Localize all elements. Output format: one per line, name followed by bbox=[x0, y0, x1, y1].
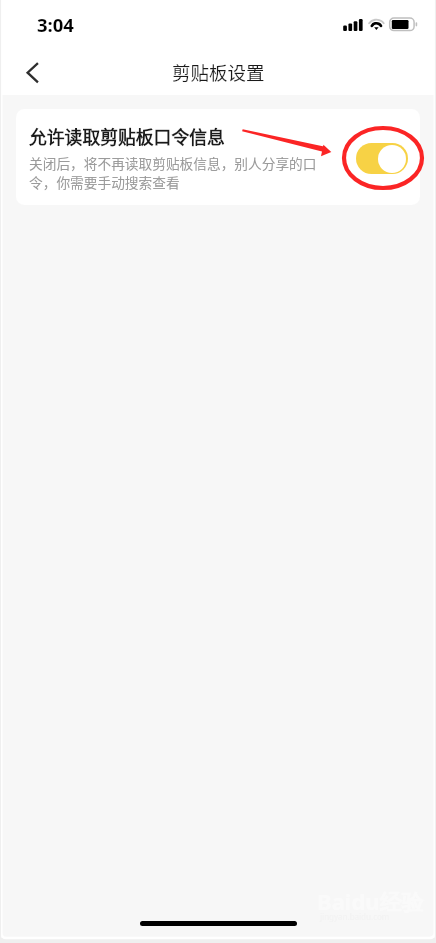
button[interactable]: 允许读取剪贴板口令信息 bbox=[16, 109, 420, 205]
staticText: 关闭后，将不再读取剪贴板信息，别人分享的口令，你需要手动搜索查看 bbox=[29, 153, 325, 192]
staticText: 3:04 bbox=[37, 12, 74, 37]
staticText: 剪贴板设置 bbox=[172, 59, 265, 86]
button[interactable]: Back bbox=[9, 48, 57, 95]
staticText: 允许读取剪贴板口令信息 bbox=[29, 123, 225, 149]
button[interactable]: Toggle clipboard reading bbox=[356, 143, 408, 174]
